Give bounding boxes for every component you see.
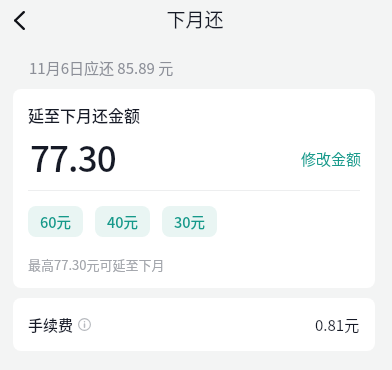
staticText: 11月6日应还 85.89 元 xyxy=(29,57,174,79)
staticText: 延至下月还金额 xyxy=(28,103,141,126)
button[interactable]: 手续费 xyxy=(13,298,375,351)
staticText: 77.30 xyxy=(30,131,116,182)
staticText: 最高77.30元可延至下月 xyxy=(28,255,165,274)
staticText: 手续费 xyxy=(28,314,74,336)
staticText: 60元 xyxy=(40,211,72,232)
button[interactable]: 30元 xyxy=(162,206,217,237)
staticText: 修改金额 xyxy=(301,148,362,170)
staticText: 下月还 xyxy=(0,5,391,33)
button[interactable]: 修改金额 xyxy=(293,142,370,176)
button[interactable]: Back xyxy=(4,5,34,35)
button[interactable]: 60元 xyxy=(28,206,83,237)
button[interactable]: 40元 xyxy=(95,206,150,237)
staticText: 40元 xyxy=(107,211,139,232)
staticText: 0.81元 xyxy=(315,314,360,336)
staticText: 30元 xyxy=(174,211,206,232)
